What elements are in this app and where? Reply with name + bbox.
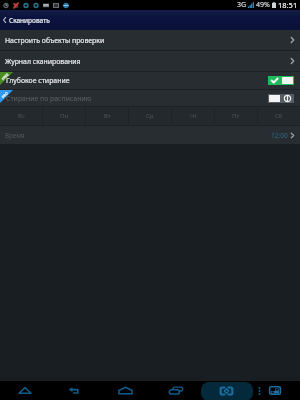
- staticText: FREE: [0, 72, 10, 81]
- button[interactable]: Вт: [86, 107, 128, 125]
- button[interactable]: Сб: [258, 107, 300, 125]
- staticText: Журнал сканирования: [5, 57, 81, 66]
- button[interactable]: Back: [63, 382, 87, 399]
- staticText: Ср: [146, 112, 154, 120]
- staticText: 3G: [237, 0, 247, 10]
- button[interactable]: Настроить объекты проверки: [0, 30, 300, 50]
- button[interactable]: Пн: [43, 107, 85, 125]
- button[interactable]: Время: [0, 126, 300, 144]
- staticText: 12:00: [271, 131, 288, 140]
- button[interactable]: Recent apps: [164, 382, 188, 399]
- staticText: Чт: [190, 112, 197, 120]
- staticText: 49%: [256, 0, 270, 10]
- staticText: 18:51: [278, 0, 298, 10]
- button[interactable]: Enabled: [268, 76, 294, 85]
- staticText: Сканировать: [9, 16, 50, 25]
- button[interactable]: Home: [113, 382, 137, 399]
- button[interactable]: Журнал сканирования: [0, 51, 300, 71]
- button[interactable]: Пт: [215, 107, 257, 125]
- button[interactable]: Smart select: [214, 382, 238, 399]
- button[interactable]: More options: [247, 382, 271, 399]
- other: Back: [2, 16, 7, 24]
- button[interactable]: Show navigation menu: [13, 382, 37, 399]
- staticText: Пн: [60, 112, 69, 120]
- staticText: Вс: [18, 112, 25, 120]
- staticText: Пт: [232, 112, 240, 120]
- staticText: PRO: [0, 90, 10, 99]
- staticText: Стирание по расписанию: [6, 94, 92, 103]
- staticText: Настроить объекты проверки: [5, 36, 105, 45]
- staticText: Сб: [275, 112, 283, 120]
- button[interactable]: Back: [0, 10, 300, 30]
- button[interactable]: Smart select: [201, 382, 253, 400]
- button[interactable]: Disabled: [268, 94, 294, 103]
- staticText: Глубокое стирание: [6, 76, 70, 85]
- button[interactable]: Глубокое стирание: [0, 72, 300, 89]
- button[interactable]: Вс: [0, 107, 42, 125]
- staticText: Вт: [104, 112, 111, 120]
- button[interactable]: Стирание по расписанию: [0, 90, 300, 106]
- staticText: Время: [5, 131, 25, 139]
- button[interactable]: Ср: [129, 107, 171, 125]
- button[interactable]: Screenshot: [263, 382, 287, 399]
